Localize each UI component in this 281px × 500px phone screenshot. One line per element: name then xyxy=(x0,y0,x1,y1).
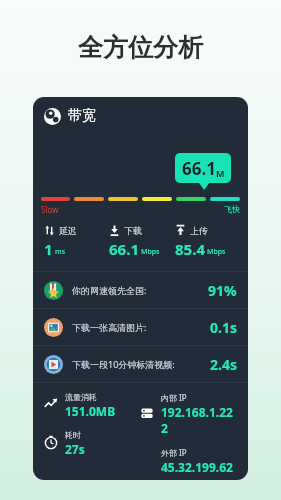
staticText: Mbps xyxy=(207,247,226,257)
staticText: 91% xyxy=(208,281,237,300)
staticText: Slow xyxy=(41,204,59,215)
staticText: 流量消耗 xyxy=(65,392,97,402)
button[interactable]: 上传 xyxy=(173,225,239,259)
button[interactable]: 下载一段10分钟标清视频: xyxy=(33,346,248,382)
staticText: 85.4 xyxy=(175,239,205,259)
button[interactable]: 耗时 xyxy=(44,430,85,457)
staticText: 192.168.1.222 xyxy=(161,404,237,436)
staticText: 1 xyxy=(44,239,53,259)
button[interactable]: 内部 IP xyxy=(140,392,237,436)
staticText: M xyxy=(216,167,225,179)
staticText: 耗时 xyxy=(65,430,81,440)
staticText: 下载 xyxy=(124,225,142,236)
staticText: Mbps xyxy=(141,247,160,257)
button[interactable]: Globe xyxy=(33,97,248,480)
staticText: 27s xyxy=(65,441,85,457)
other: Globe xyxy=(44,108,61,125)
staticText: 延迟 xyxy=(59,225,77,236)
staticText: 飞快 xyxy=(224,204,240,214)
staticText: 上传 xyxy=(190,225,208,236)
staticText: 151.0MB xyxy=(65,403,116,419)
staticText: 45.32.199.62 xyxy=(161,459,233,475)
staticText: 66.1 xyxy=(109,239,139,259)
staticText: 外部 IP xyxy=(161,447,187,458)
staticText: 带宽 xyxy=(68,107,96,125)
staticText: 你的网速领先全国: xyxy=(72,284,147,296)
button[interactable]: 延迟 xyxy=(42,225,107,259)
button[interactable]: 下载一张高清图片: xyxy=(33,309,248,345)
staticText: 下载一段10分钟标清视频: xyxy=(72,358,175,370)
button[interactable]: 外部 IP xyxy=(140,447,233,475)
staticText: 66.1 xyxy=(182,157,216,180)
staticText: 全方位分析 xyxy=(0,32,281,63)
button[interactable]: 你的网速领先全国: xyxy=(33,272,248,308)
staticText: 0.1s xyxy=(210,318,237,337)
staticText: ms xyxy=(55,247,66,257)
button[interactable]: 流量消耗 xyxy=(44,392,116,419)
staticText: 2.4s xyxy=(210,355,237,374)
staticText: 下载一张高清图片: xyxy=(72,321,147,333)
staticText: 内部 IP xyxy=(161,392,187,403)
button[interactable]: 下载 xyxy=(107,225,173,259)
